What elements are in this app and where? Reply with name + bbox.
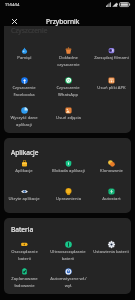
staticText: Czyszczenie Facebooka <box>12 85 36 97</box>
button[interactable]: Oszczędzanie baterii <box>3 234 45 261</box>
staticText: Autostart <box>102 196 121 202</box>
button[interactable]: Ustawienia baterii <box>90 234 132 261</box>
staticText: 11:54:54 <box>5 2 20 7</box>
button[interactable]: Ultraoszczędzanie baterii <box>47 234 89 261</box>
button[interactable]: Usuń zdjęcia <box>47 100 89 127</box>
staticText: Pamięć <box>17 55 32 61</box>
button[interactable]: Zamknij <box>7 14 21 28</box>
staticText: Aplikacje <box>15 168 33 174</box>
staticText: Wyczyść dane aplikacji <box>10 115 38 127</box>
staticText: Ukryte aplikacje <box>8 196 40 202</box>
staticText: Oszczędzanie baterii <box>11 249 38 261</box>
staticText: Blokada aplikacji <box>52 168 85 174</box>
button[interactable]: Uprawnienia <box>47 181 89 208</box>
button[interactable]: Zaplanowane ładowanie <box>3 261 45 288</box>
button[interactable]: Ukryte aplikacje <box>3 181 45 208</box>
button[interactable]: Dokładne czyszczenie <box>47 40 89 67</box>
staticText: Klonowanie <box>100 168 123 174</box>
button[interactable]: Czyszczenie Facebooka <box>3 70 45 97</box>
button[interactable]: Blokada aplikacji <box>47 153 89 180</box>
button[interactable]: Zarządzaj filmami <box>90 40 132 67</box>
staticText: Czyszczenie <box>11 26 48 35</box>
staticText: Zaplanowane ładowanie <box>11 276 38 288</box>
button[interactable]: Czyszczenie WhatsApp <box>47 70 89 97</box>
staticText: Zarządzaj filmami <box>94 55 129 61</box>
staticText: Dokładne czyszczenie <box>57 55 80 67</box>
button[interactable]: Wyczyść dane aplikacji <box>3 100 45 127</box>
staticText: Aplikacje <box>11 148 39 157</box>
staticText: Usuń zdjęcia <box>56 115 81 121</box>
button[interactable]: Klonowanie <box>90 153 132 180</box>
staticText: Przybornik <box>46 17 80 26</box>
staticText: Czyszczenie WhatsApp <box>56 85 80 97</box>
staticText: Usuń pliki APK <box>97 85 126 91</box>
button[interactable]: Pamięć <box>3 40 45 67</box>
staticText: Uprawnienia <box>56 196 81 202</box>
staticText: Ultraoszczędzanie baterii <box>50 249 86 261</box>
button[interactable]: Usuń pliki APK <box>90 70 132 97</box>
staticText: Automatyczne wł./ wył. <box>50 276 87 288</box>
staticText: Bateria <box>11 225 34 234</box>
button[interactable]: Autostart <box>90 181 132 208</box>
button[interactable]: Automatyczne wł./ wył. <box>47 261 89 288</box>
staticText: Ustawienia baterii <box>93 249 129 255</box>
button[interactable]: Aplikacje <box>3 153 45 180</box>
